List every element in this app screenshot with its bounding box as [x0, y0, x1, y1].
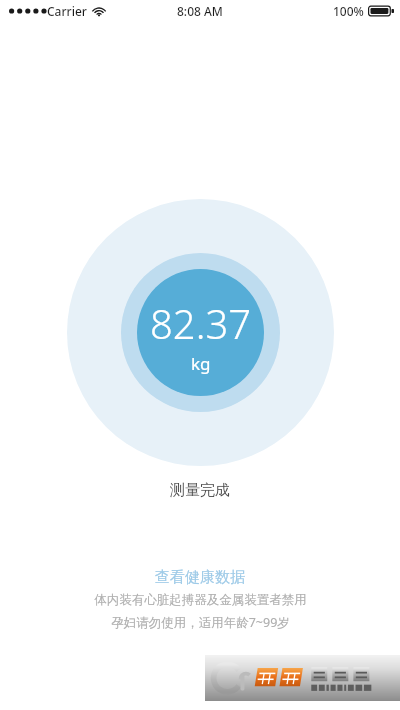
- button[interactable]: 查看健康数据: [141, 562, 259, 593]
- staticText: 100%: [333, 3, 364, 19]
- staticText: 孕妇请勿使用，适用年龄7~99岁: [111, 614, 290, 631]
- staticText: 8:08 AM: [177, 3, 223, 19]
- staticText: kg: [191, 352, 211, 375]
- staticText: 82.37: [150, 296, 252, 350]
- staticText: Carrier: [47, 3, 87, 19]
- staticText: 测量完成: [170, 481, 230, 500]
- staticText: 查看健康数据: [155, 568, 245, 587]
- staticText: 体内装有心脏起搏器及金属装置者禁用: [94, 592, 307, 608]
